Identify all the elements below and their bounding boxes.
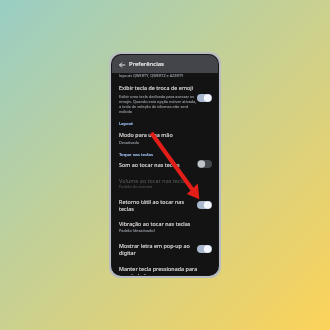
staticText: Mostrar letra em pop-up ao digitar [119, 242, 190, 256]
button[interactable]: Exibir tecla de troca de emoji [112, 78, 218, 119]
button[interactable]: Ativado [197, 201, 212, 209]
staticText: Vibração ao tocar nas teclas [119, 220, 191, 227]
button[interactable]: Som ao tocar nas teclas [112, 159, 218, 173]
staticText: Desativado [119, 140, 140, 145]
button[interactable]: Desativado [197, 160, 212, 168]
button[interactable]: Retorno tátil ao tocar nas teclas [112, 194, 218, 216]
staticText: Toque nas teclas [119, 152, 153, 157]
button[interactable]: Ativado [197, 245, 212, 253]
staticText: Exibir tecla de troca de emoji [119, 84, 194, 91]
button[interactable]: Volume ao tocar nas teclas [112, 173, 218, 194]
staticText: Padrão (desativado) [119, 228, 155, 233]
button[interactable]: Vibração ao tocar nas teclas [112, 216, 218, 238]
button[interactable]: Manter tecla pressionada para ver símbol… [112, 262, 218, 275]
staticText: Modo para uma mão [119, 131, 173, 138]
button[interactable]: Voltar [116, 59, 127, 70]
staticText: Exibir uma tecla dedicada para acessar o… [119, 94, 197, 114]
staticText: Manter tecla pressionada para ver símbol… [119, 265, 198, 275]
staticText: Som ao tocar nas teclas [119, 161, 180, 168]
staticText: Preferências [129, 60, 164, 68]
button[interactable]: Ativado [197, 94, 212, 102]
button[interactable]: Modo para uma mão [112, 130, 218, 150]
staticText: Retorno tátil ao tocar nas teclas [119, 198, 184, 212]
staticText: layouts QWERTY, QWERTZ e AZERTY [119, 73, 184, 78]
staticText: Padrão do sistema [119, 184, 153, 189]
button[interactable]: Mostrar letra em pop-up ao digitar [112, 238, 218, 262]
staticText: Volume ao tocar nas teclas [119, 177, 188, 184]
staticText: Layout [119, 121, 133, 126]
